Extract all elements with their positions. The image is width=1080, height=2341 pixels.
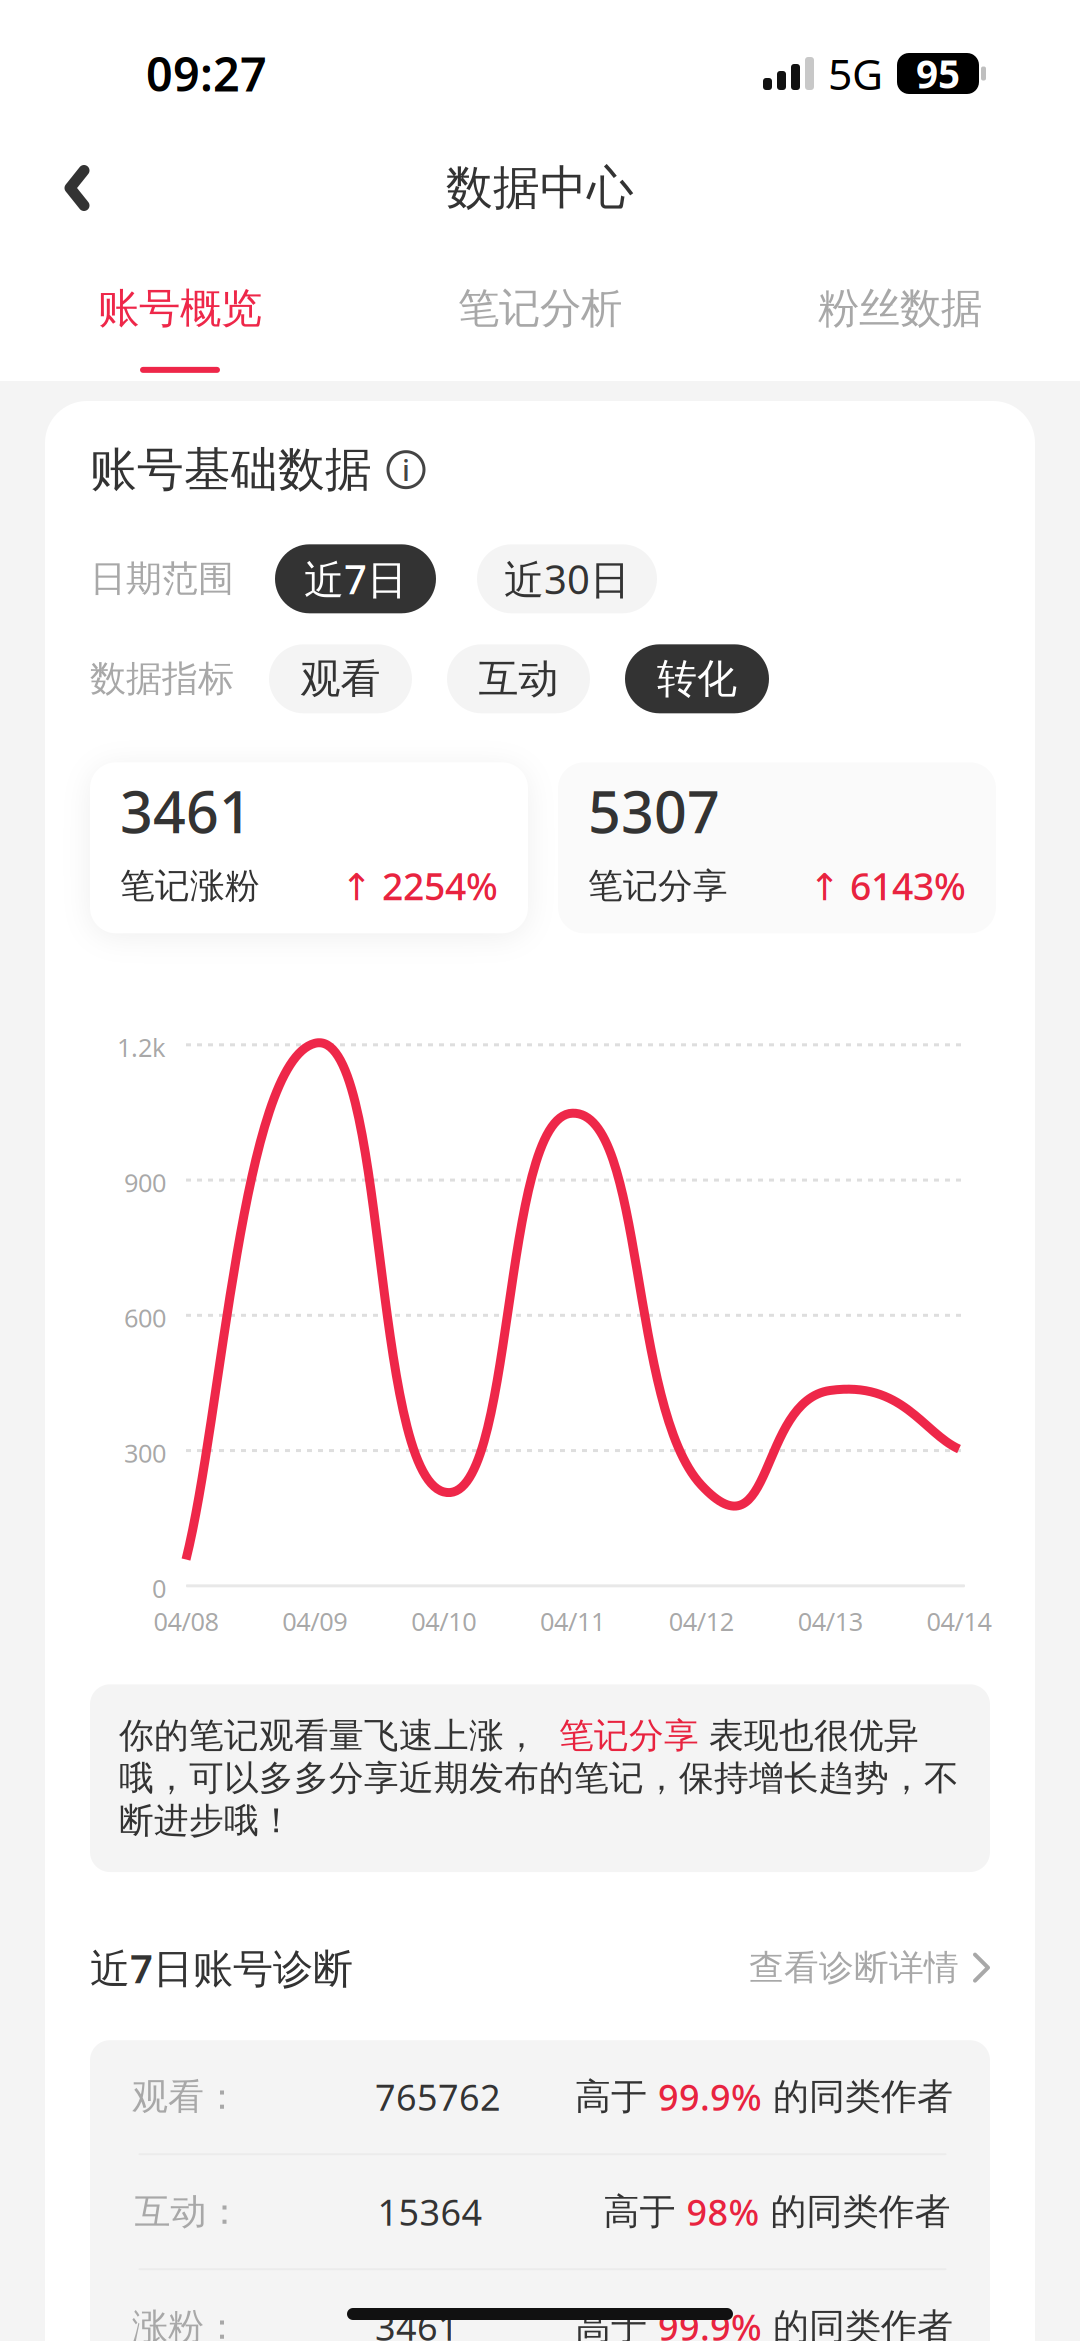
staticText: 04/12 bbox=[669, 1604, 734, 1638]
button[interactable]: 转化 bbox=[625, 644, 769, 713]
staticText: 3461 bbox=[120, 773, 252, 849]
button[interactable]: 笔记分析 bbox=[360, 255, 720, 373]
staticText: 5307 bbox=[588, 773, 720, 849]
staticText: 高于 bbox=[575, 2305, 658, 2341]
button[interactable]: 粉丝数据 bbox=[720, 255, 1080, 373]
staticText: 04/13 bbox=[798, 1604, 863, 1638]
staticText: ↑ 2254% bbox=[341, 861, 498, 911]
staticText: 近7日账号诊断 bbox=[90, 1941, 353, 1994]
staticText: 观看 bbox=[300, 654, 380, 703]
button[interactable]: 近30日 bbox=[477, 544, 657, 613]
staticText: 04/14 bbox=[926, 1604, 991, 1638]
staticText: 5G bbox=[828, 45, 883, 102]
staticText: 数据指标 bbox=[90, 657, 234, 701]
staticText: 300 bbox=[124, 1436, 166, 1470]
staticText: 04/09 bbox=[282, 1604, 347, 1638]
staticText: 观看： bbox=[132, 2075, 240, 2119]
button[interactable]: Info bbox=[388, 452, 424, 488]
staticText: 笔记分析 bbox=[458, 283, 622, 334]
staticText: 09:27 bbox=[146, 42, 267, 104]
staticText: 账号基础数据 bbox=[90, 441, 372, 498]
staticText: 互动 bbox=[478, 654, 558, 703]
button[interactable]: 观看 bbox=[269, 644, 412, 713]
staticText: 600 bbox=[124, 1301, 166, 1334]
staticText: 的同类作者 bbox=[762, 2305, 953, 2341]
staticText: 高于 bbox=[603, 2190, 686, 2234]
staticText: i bbox=[402, 450, 410, 489]
staticText: 日期范围 bbox=[90, 557, 234, 601]
staticText: 账号概览 bbox=[98, 283, 262, 334]
staticText: 粉丝数据 bbox=[818, 283, 982, 334]
staticText: 900 bbox=[124, 1166, 166, 1199]
staticText: 你的笔记观看量飞速上涨， 笔记分享 表现也很优异哦，可以多多分享近期发布的笔记，… bbox=[119, 1714, 959, 1842]
staticText: 的同类作者 bbox=[759, 2190, 950, 2234]
staticText: ↑ 6143% bbox=[809, 861, 966, 911]
staticText: 查看诊断详情 bbox=[749, 1946, 959, 1989]
staticText: 98% bbox=[686, 2188, 759, 2236]
staticText: 1.2k bbox=[117, 1030, 166, 1064]
staticText: 互动： bbox=[134, 2190, 242, 2234]
staticText: 15364 bbox=[377, 2188, 482, 2236]
staticText: 近7日 bbox=[304, 552, 407, 605]
staticText: 04/11 bbox=[540, 1604, 605, 1638]
button[interactable]: 3461 bbox=[90, 762, 528, 933]
staticText: 765762 bbox=[375, 2073, 501, 2121]
staticText: 的同类作者 bbox=[762, 2075, 953, 2119]
staticText: 04/10 bbox=[411, 1604, 476, 1638]
staticText: 高于 bbox=[575, 2075, 658, 2119]
button[interactable]: 互动 bbox=[447, 644, 590, 713]
staticText: 笔记涨粉 bbox=[120, 865, 260, 907]
staticText: 04/08 bbox=[153, 1604, 218, 1638]
staticText: 数据中心 bbox=[446, 159, 634, 217]
staticText: 0 bbox=[152, 1571, 166, 1605]
button[interactable]: 账号概览 bbox=[0, 255, 360, 373]
button[interactable]: 近7日 bbox=[275, 544, 436, 613]
button[interactable]: Back bbox=[34, 143, 120, 233]
button[interactable]: 查看诊断详情 bbox=[749, 1946, 990, 1989]
staticText: 笔记分享 bbox=[588, 865, 728, 907]
button[interactable]: 5307 bbox=[558, 762, 996, 933]
staticText: 95 bbox=[916, 48, 960, 99]
staticText: 涨粉： bbox=[132, 2305, 240, 2341]
staticText: 转化 bbox=[657, 654, 737, 703]
staticText: 99.9% bbox=[658, 2073, 762, 2121]
staticText: 3461 bbox=[375, 2303, 459, 2341]
staticText: 99.9% bbox=[658, 2303, 762, 2341]
staticText: 近30日 bbox=[504, 552, 630, 605]
